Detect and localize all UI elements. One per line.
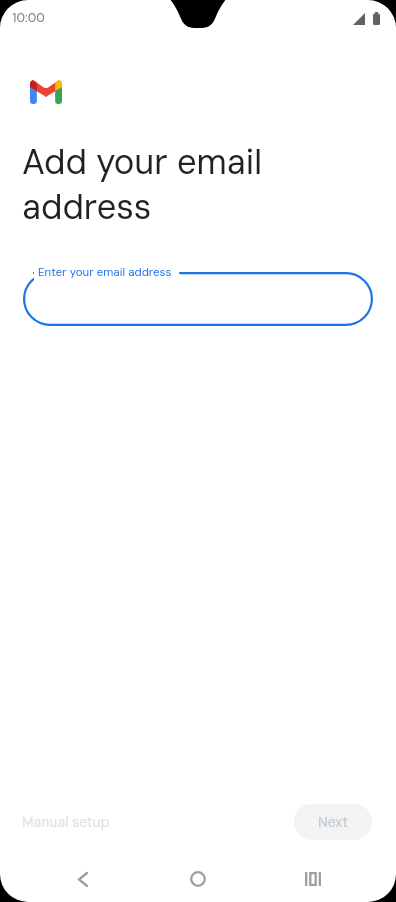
button[interactable]: Next [294, 804, 372, 840]
staticText: Add your email address [22, 140, 262, 229]
staticText: Next [318, 813, 348, 831]
button[interactable]: Home [140, 857, 255, 901]
button[interactable]: Back [26, 857, 140, 901]
button[interactable]: Manual setup [16, 805, 116, 839]
staticText: Manual setup [22, 813, 110, 831]
button[interactable]: Recent apps [255, 857, 370, 901]
staticText: Enter your email address [38, 265, 172, 280]
staticText: 10:00 [12, 9, 45, 26]
